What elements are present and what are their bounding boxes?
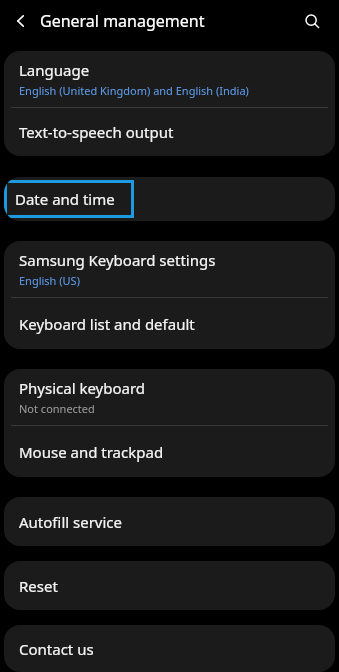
button[interactable]: Physical keyboard	[4, 369, 335, 425]
button[interactable]: Text-to-speech output	[4, 108, 335, 156]
staticText: Not connected	[19, 401, 95, 416]
staticText: Language	[19, 60, 90, 80]
button[interactable]: Language	[4, 51, 335, 107]
button[interactable]: Reset	[4, 561, 335, 610]
button[interactable]: Date and time	[4, 180, 134, 218]
staticText: Samsung Keyboard settings	[19, 250, 216, 270]
staticText: Date and time	[15, 189, 115, 209]
button[interactable]: Mouse and trackpad	[4, 426, 335, 477]
staticText: Physical keyboard	[19, 378, 146, 398]
staticText: Contact us	[19, 639, 94, 659]
staticText: Text-to-speech output	[19, 122, 174, 142]
button[interactable]: Contact us	[4, 625, 335, 672]
button[interactable]: Samsung Keyboard settings	[4, 241, 335, 297]
staticText: General management	[40, 10, 205, 32]
button[interactable]: Keyboard list and default	[4, 298, 335, 349]
staticText: Autofill service	[19, 512, 123, 532]
staticText: English (United Kingdom) and English (In…	[19, 83, 249, 98]
button[interactable]: Search	[299, 8, 325, 34]
staticText: Keyboard list and default	[19, 314, 195, 334]
staticText: English (US)	[19, 273, 80, 288]
staticText: Mouse and trackpad	[19, 442, 164, 462]
button[interactable]: Autofill service	[4, 497, 335, 546]
button[interactable]: Back	[8, 8, 34, 34]
staticText: Reset	[19, 576, 58, 596]
